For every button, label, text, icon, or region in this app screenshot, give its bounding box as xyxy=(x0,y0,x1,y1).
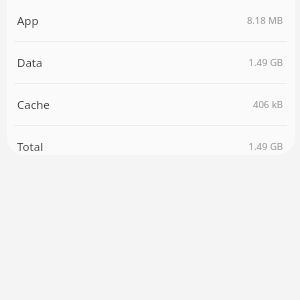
button[interactable]: App xyxy=(7,0,295,41)
staticText: Cache xyxy=(17,97,50,113)
staticText: App xyxy=(17,13,39,29)
staticText: 8.18 MB xyxy=(246,14,283,27)
button[interactable]: Data xyxy=(7,42,295,83)
staticText: 1.49 GB xyxy=(248,56,283,69)
staticText: 1.49 GB xyxy=(248,140,283,153)
staticText: 406 kB xyxy=(252,98,283,111)
button[interactable]: Total xyxy=(7,126,295,155)
button[interactable]: Cache xyxy=(7,84,295,125)
staticText: Total xyxy=(17,139,44,155)
staticText: Data xyxy=(17,55,43,71)
